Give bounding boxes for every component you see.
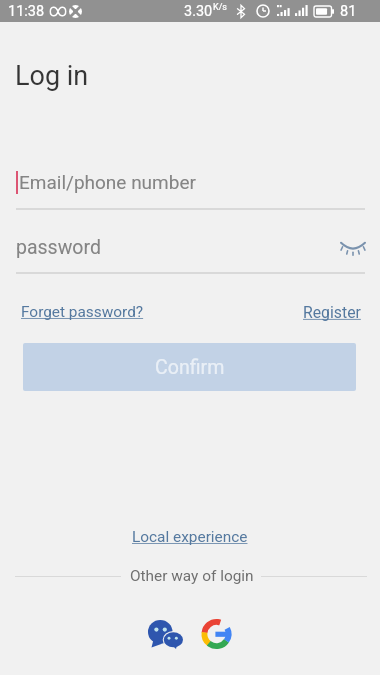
button[interactable]: Log in with WeChat [146,615,184,653]
staticText: password [16,236,101,259]
button[interactable]: Register [303,303,361,322]
button[interactable]: Show password [335,229,371,265]
staticText: 11:38 [8,3,45,20]
staticText: Other way of login [130,567,254,585]
staticText: Confirm [155,356,225,379]
staticText: Log in [15,60,89,92]
button[interactable]: Log in with Google [196,614,236,654]
button[interactable]: Forget password? [21,303,144,321]
button[interactable]: Confirm [23,343,356,391]
staticText: Email/phone number [19,171,196,193]
button[interactable]: Email/phone number [16,162,364,202]
button[interactable]: Local experience [132,528,248,546]
staticText: K/s [213,2,228,13]
staticText: 81 [340,3,357,20]
staticText: 3.30 [184,3,213,20]
